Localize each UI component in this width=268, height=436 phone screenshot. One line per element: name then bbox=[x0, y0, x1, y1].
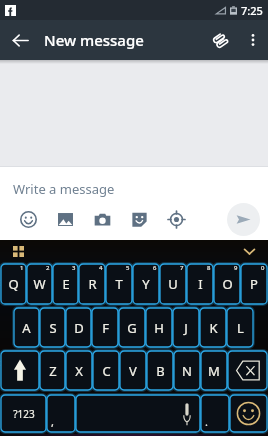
button[interactable]: H bbox=[146, 308, 172, 347]
button[interactable]: J bbox=[173, 308, 199, 347]
staticText: J bbox=[184, 319, 188, 337]
button[interactable]: Space bbox=[76, 395, 200, 432]
button[interactable]: More options bbox=[238, 25, 268, 55]
button[interactable]: P bbox=[241, 264, 267, 304]
staticText: 1 bbox=[20, 264, 24, 272]
staticText: F bbox=[102, 319, 109, 337]
button[interactable]: B bbox=[147, 351, 173, 390]
staticText: 7 bbox=[180, 264, 184, 272]
button[interactable]: Q bbox=[1, 264, 26, 304]
button[interactable]: O bbox=[214, 264, 240, 304]
button[interactable]: Z bbox=[40, 351, 65, 390]
staticText: T bbox=[115, 275, 123, 293]
button[interactable]: Location bbox=[158, 200, 195, 238]
staticText: . bbox=[205, 414, 208, 429]
button[interactable]: Stickers bbox=[121, 200, 158, 238]
staticText: O bbox=[222, 275, 233, 293]
button[interactable]: K bbox=[200, 308, 226, 347]
button[interactable]: X bbox=[66, 351, 92, 390]
staticText: M bbox=[208, 362, 220, 380]
staticText: ?123 bbox=[13, 407, 35, 421]
button[interactable]: , bbox=[47, 395, 75, 432]
button[interactable]: . bbox=[201, 395, 229, 432]
staticText: , bbox=[51, 414, 54, 429]
button[interactable]: C bbox=[93, 351, 119, 390]
staticText: 8 bbox=[207, 264, 211, 272]
button[interactable]: M bbox=[201, 351, 227, 390]
staticText: 3 bbox=[72, 264, 76, 272]
button[interactable]: Back bbox=[0, 20, 40, 60]
staticText: R bbox=[88, 275, 97, 293]
button[interactable]: G bbox=[119, 308, 145, 347]
button[interactable]: U bbox=[160, 264, 186, 304]
staticText: C bbox=[102, 362, 111, 380]
button[interactable]: Emoji keyboard bbox=[230, 395, 267, 432]
button[interactable]: Keyboard themes bbox=[8, 241, 28, 261]
staticText: K bbox=[209, 319, 218, 337]
staticText: 6 bbox=[153, 264, 157, 272]
staticText: D bbox=[74, 319, 84, 337]
staticText: X bbox=[75, 362, 83, 380]
button[interactable]: Attach bbox=[202, 22, 238, 58]
button[interactable]: Write a message bbox=[13, 180, 268, 198]
button[interactable]: R bbox=[79, 264, 105, 304]
staticText: P bbox=[250, 275, 258, 293]
staticText: L bbox=[237, 319, 244, 337]
button[interactable]: S bbox=[40, 308, 65, 347]
button[interactable]: Gallery bbox=[47, 200, 84, 238]
button[interactable]: F bbox=[92, 308, 118, 347]
button[interactable]: T bbox=[106, 264, 132, 304]
button[interactable]: D bbox=[66, 308, 91, 347]
staticText: 5 bbox=[126, 264, 130, 272]
button[interactable]: Send bbox=[227, 203, 260, 236]
button[interactable]: Camera bbox=[84, 200, 121, 238]
staticText: N bbox=[182, 362, 192, 380]
button[interactable]: Shift bbox=[1, 351, 39, 390]
staticText: H bbox=[154, 319, 164, 337]
button[interactable]: ?123 bbox=[1, 395, 46, 432]
staticText: W bbox=[33, 275, 46, 293]
button[interactable]: Hide keyboard bbox=[238, 240, 260, 262]
staticText: 2 bbox=[46, 264, 50, 272]
staticText: New message bbox=[44, 30, 144, 50]
button[interactable]: Emoji bbox=[10, 200, 47, 238]
button[interactable]: Y bbox=[133, 264, 159, 304]
button[interactable]: W bbox=[27, 264, 52, 304]
staticText: E bbox=[62, 275, 70, 293]
staticText: S bbox=[49, 319, 57, 337]
button[interactable]: Backspace bbox=[228, 351, 267, 390]
button[interactable]: N bbox=[174, 351, 200, 390]
staticText: Y bbox=[142, 275, 150, 293]
staticText: B bbox=[156, 362, 165, 380]
staticText: 0 bbox=[261, 264, 265, 272]
staticText: U bbox=[168, 275, 178, 293]
staticText: A bbox=[22, 319, 31, 337]
staticText: Z bbox=[49, 362, 57, 380]
staticText: I bbox=[198, 275, 203, 293]
staticText: 4 bbox=[99, 264, 103, 272]
button[interactable]: L bbox=[227, 308, 253, 347]
staticText: Q bbox=[8, 275, 19, 293]
staticText: G bbox=[127, 319, 137, 337]
staticText: 7:25 bbox=[241, 3, 263, 18]
button[interactable]: V bbox=[120, 351, 146, 390]
staticText: V bbox=[129, 362, 137, 380]
button[interactable]: A bbox=[14, 308, 39, 347]
staticText: 9 bbox=[234, 264, 238, 272]
button[interactable]: E bbox=[53, 264, 78, 304]
button[interactable]: I bbox=[187, 264, 213, 304]
